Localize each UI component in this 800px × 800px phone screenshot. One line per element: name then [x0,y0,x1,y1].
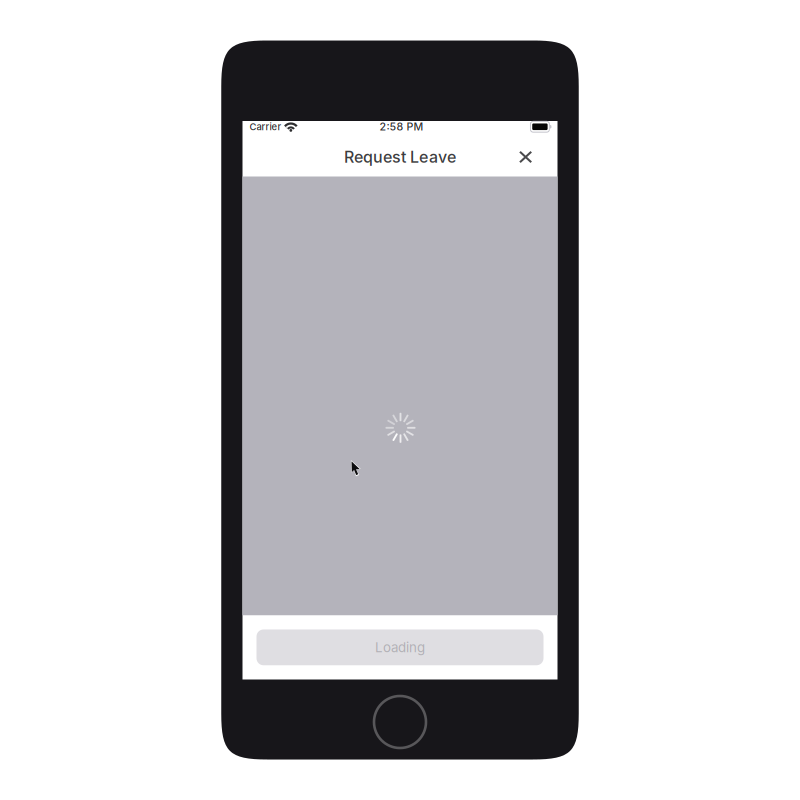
button[interactable]: Close [509,140,543,174]
staticText: Carrier [250,121,282,132]
staticText: 2:58 PM [379,120,423,133]
staticText: Loading [375,639,425,655]
button[interactable]: Loading [242,629,557,665]
staticText: Request Leave [344,147,456,167]
